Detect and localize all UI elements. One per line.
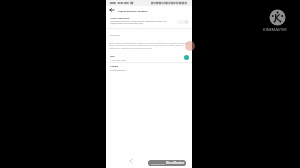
staticText: Описание [110, 34, 120, 37]
staticText: KineMaster [166, 161, 185, 165]
staticText: KINEMASTER [263, 27, 287, 32]
staticText: Новое уведомление [110, 17, 130, 20]
staticText: Дни [110, 55, 115, 58]
staticText: Автоматическое управление режимом звука … [110, 19, 167, 22]
staticText: с 9:00 до 18:00 [110, 59, 127, 62]
staticText: будет включено когда выполнены все задан… [109, 43, 184, 46]
button[interactable]: Режим [106, 65, 192, 73]
button[interactable]: Новое уведомление [106, 15, 192, 27]
staticText: Редактировать правило [118, 9, 148, 12]
staticText: Режим [110, 65, 119, 68]
staticText: Это правило позволяет задать точные усло… [109, 41, 189, 44]
staticText: режим не изменится автоматически. [109, 46, 153, 49]
staticText: Recorded by [151, 162, 165, 165]
button[interactable]: Дни [106, 55, 192, 63]
staticText: Не беспокоить [110, 69, 127, 72]
button[interactable]: Назад [127, 157, 135, 165]
staticText: заданному расписанию дня [110, 21, 144, 24]
button[interactable]: Переключатель правила [177, 20, 188, 24]
button[interactable]: Назад [109, 7, 115, 13]
